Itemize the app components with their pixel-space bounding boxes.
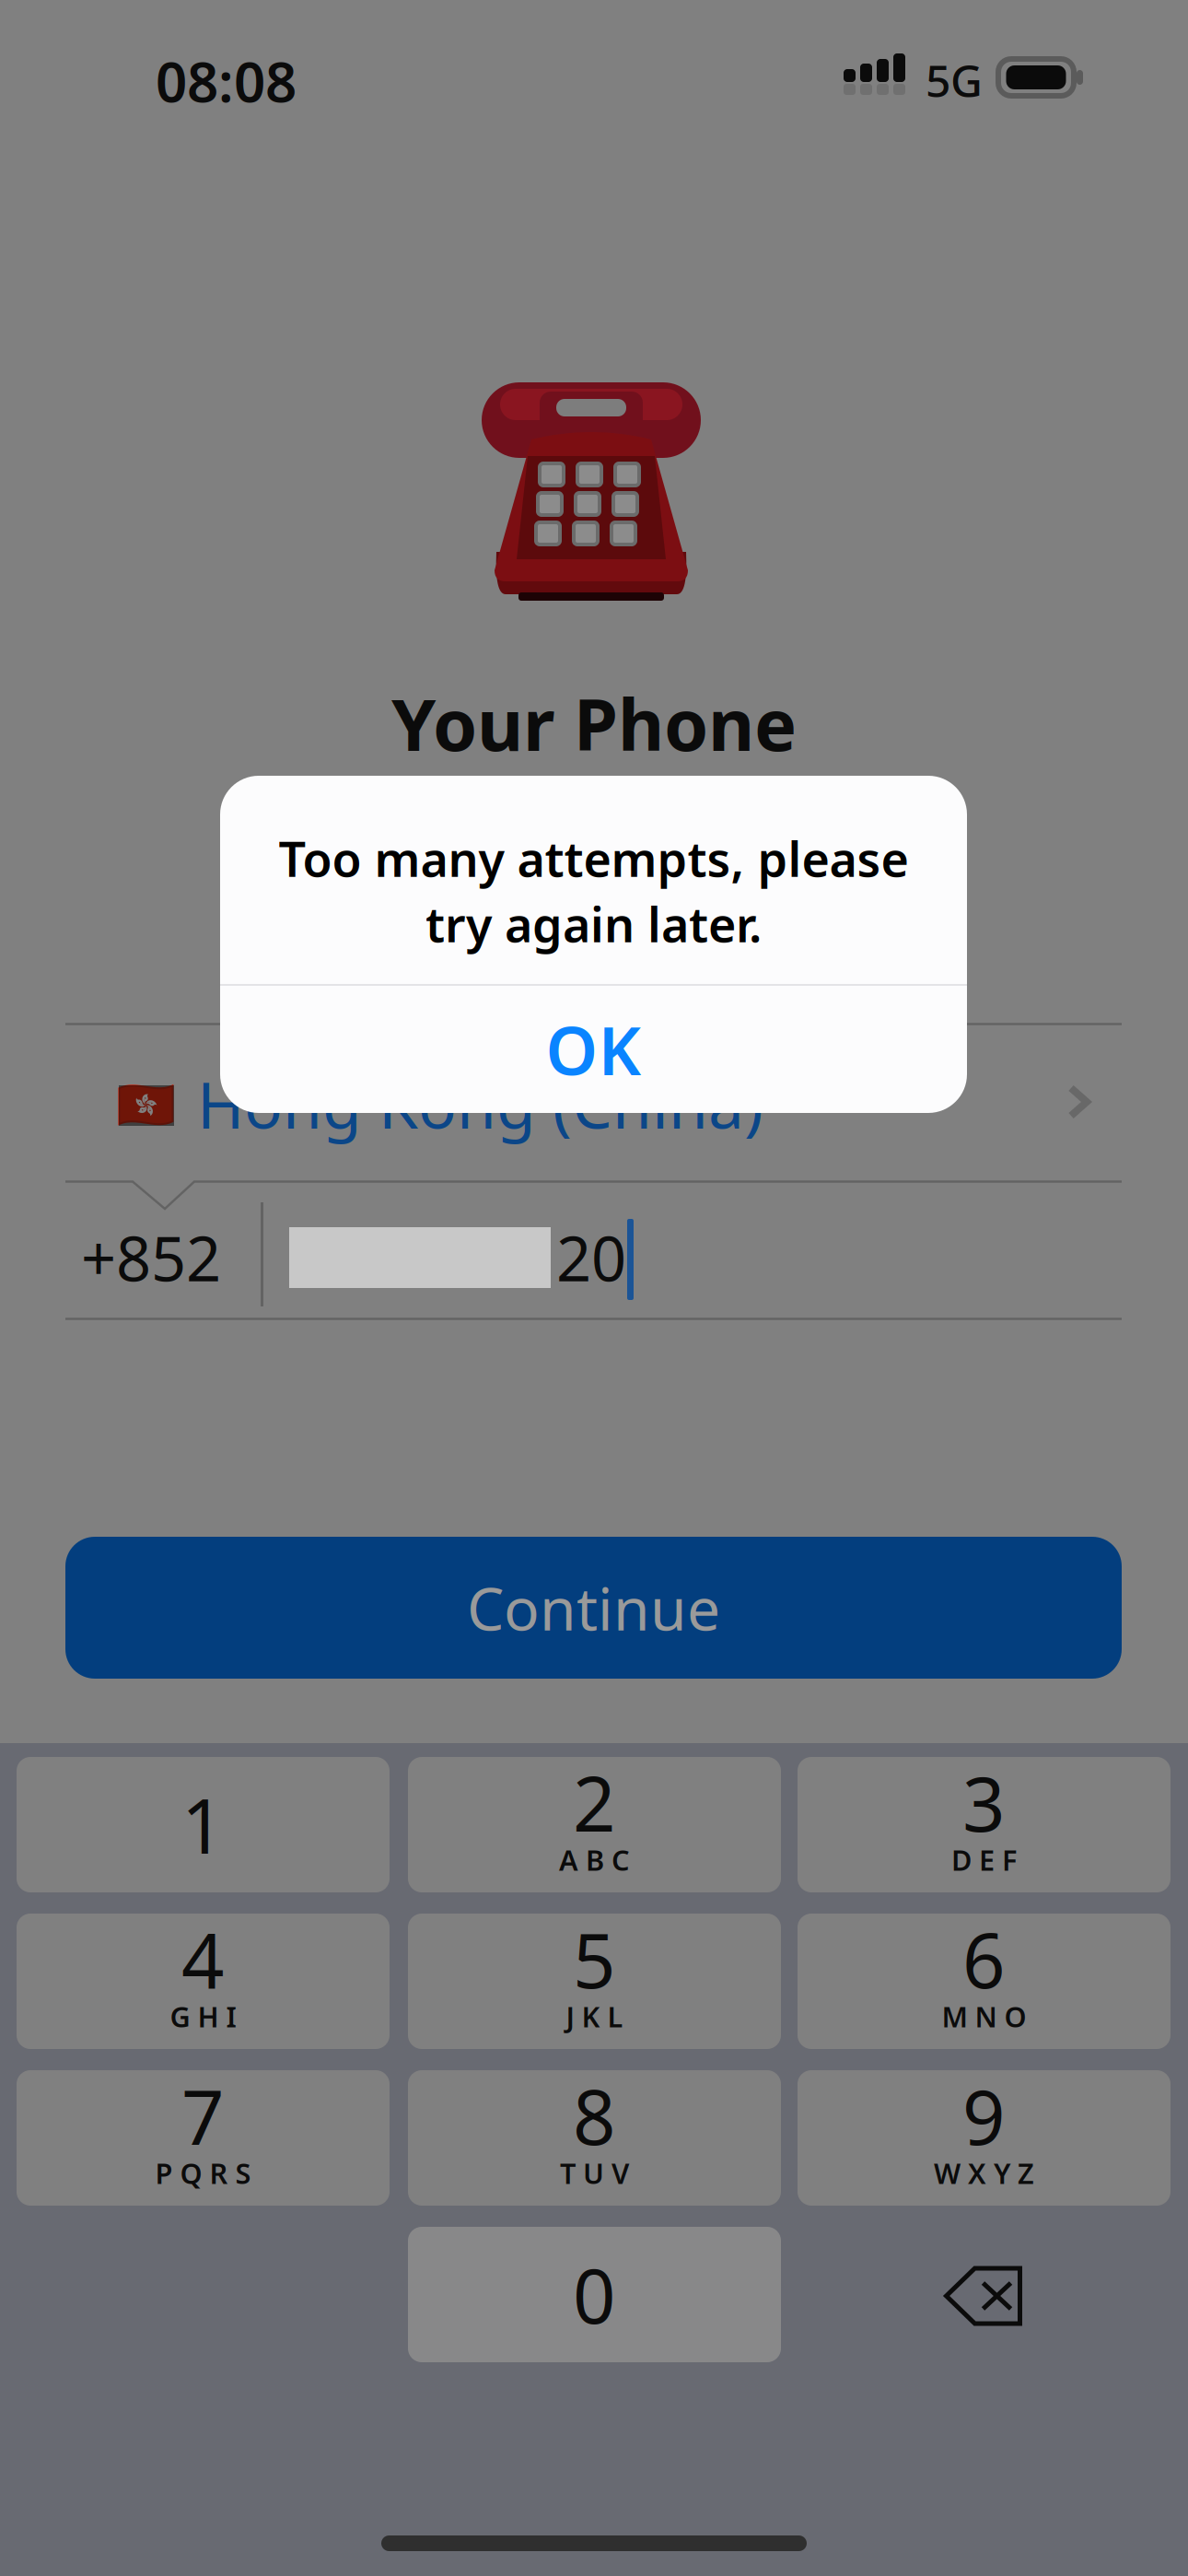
staticText: A B C: [559, 1841, 630, 1878]
staticText: M N O: [942, 1998, 1026, 2035]
staticText: 8: [573, 2066, 616, 2166]
staticText: 6: [962, 1909, 1006, 2009]
staticText: T U V: [560, 2154, 629, 2192]
staticText: W X Y Z: [934, 2154, 1034, 2192]
staticText: J K L: [566, 1998, 623, 2035]
staticText: 20: [556, 1217, 626, 1298]
staticText: 08:08: [156, 44, 297, 118]
staticText: 5G: [926, 51, 983, 109]
staticText: 3: [962, 1753, 1006, 1852]
staticText: P Q R S: [155, 2154, 251, 2192]
staticText: Hong Kong (China): [197, 1061, 763, 1146]
staticText: 0: [573, 2245, 616, 2344]
button[interactable]: 2: [408, 1757, 781, 1892]
staticText: 9: [962, 2066, 1006, 2166]
staticText: G H I: [170, 1998, 236, 2035]
staticText: OK: [546, 1005, 641, 1093]
button[interactable]: 7: [17, 2070, 390, 2206]
button[interactable]: 1: [17, 1757, 390, 1892]
button[interactable]: OK: [220, 986, 967, 1113]
button[interactable]: Delete: [798, 2227, 1171, 2365]
staticText: 5: [573, 1909, 616, 2009]
staticText: 7: [181, 2066, 225, 2166]
staticText: 1: [181, 1775, 225, 1874]
button[interactable]: Continue: [65, 1537, 1122, 1679]
staticText: Too many attempts, please: [279, 826, 908, 890]
button[interactable]: 9: [798, 2070, 1171, 2206]
button[interactable]: 3: [798, 1757, 1171, 1892]
staticText: +852: [81, 1217, 221, 1298]
button[interactable]: 🇭🇰: [0, 1025, 1188, 1183]
button[interactable]: 0: [408, 2227, 781, 2362]
button[interactable]: 4: [17, 1914, 390, 2049]
staticText: Your Phone: [391, 676, 797, 771]
staticText: try again later.: [425, 892, 762, 955]
button[interactable]: 6: [798, 1914, 1171, 2049]
staticText: D E F: [951, 1841, 1017, 1878]
staticText: 🇭🇰: [116, 1077, 175, 1132]
button[interactable]: 5: [408, 1914, 781, 2049]
staticText: 4: [181, 1909, 225, 2009]
button[interactable]: 8: [408, 2070, 781, 2206]
staticText: Continue: [467, 1569, 720, 1647]
staticText: 2: [573, 1753, 616, 1852]
